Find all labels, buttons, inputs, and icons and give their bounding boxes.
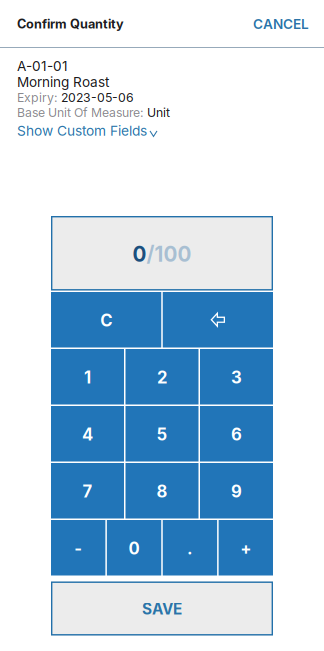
staticText: 0 bbox=[132, 242, 146, 267]
button[interactable]: 3 bbox=[200, 349, 273, 404]
staticText: CANCEL bbox=[253, 16, 309, 32]
button[interactable]: 5 bbox=[125, 406, 198, 461]
staticText: 1 bbox=[84, 367, 91, 388]
button[interactable]: - bbox=[51, 520, 105, 575]
button[interactable]: 6 bbox=[200, 406, 273, 461]
staticText: C bbox=[100, 310, 112, 331]
staticText: 4 bbox=[82, 424, 93, 445]
button[interactable]: 8 bbox=[125, 463, 198, 518]
staticText: . bbox=[187, 538, 193, 559]
staticText: 2023-05-06 bbox=[61, 90, 134, 105]
staticText: SAVE bbox=[142, 600, 182, 618]
staticText: 2 bbox=[157, 367, 167, 388]
staticText: 8 bbox=[156, 481, 167, 502]
staticText: Base Unit Of Measure: bbox=[17, 105, 144, 120]
staticText: A-01-01 bbox=[17, 58, 68, 74]
staticText: Morning Roast bbox=[17, 74, 109, 90]
button[interactable]: 1 bbox=[51, 349, 124, 404]
button[interactable]: . bbox=[163, 520, 217, 575]
button[interactable]: C bbox=[51, 292, 161, 347]
button[interactable]: 7 bbox=[51, 463, 124, 518]
staticText: Unit bbox=[147, 105, 170, 120]
staticText: - bbox=[74, 538, 82, 559]
button[interactable]: 0 bbox=[107, 520, 161, 575]
staticText: 6 bbox=[231, 424, 242, 445]
staticText: 9 bbox=[231, 481, 242, 502]
button[interactable]: SAVE bbox=[51, 581, 273, 635]
button[interactable]: CANCEL bbox=[223, 9, 309, 39]
staticText: /100 bbox=[146, 242, 191, 267]
staticText: + bbox=[240, 538, 251, 559]
button[interactable]: Backspace bbox=[163, 292, 273, 347]
button[interactable]: 2 bbox=[125, 349, 198, 404]
staticText: 5 bbox=[156, 424, 167, 445]
staticText: Expiry: bbox=[17, 90, 58, 105]
button[interactable]: 9 bbox=[200, 463, 273, 518]
staticText: Show Custom Fields bbox=[17, 122, 147, 139]
button[interactable]: Show Custom Fields bbox=[17, 120, 307, 139]
staticText: Confirm Quantity bbox=[17, 16, 124, 32]
staticText: 3 bbox=[231, 367, 242, 388]
staticText: 0 bbox=[129, 538, 140, 559]
button[interactable]: 4 bbox=[51, 406, 124, 461]
button[interactable]: + bbox=[219, 520, 273, 575]
staticText: 7 bbox=[82, 481, 92, 502]
